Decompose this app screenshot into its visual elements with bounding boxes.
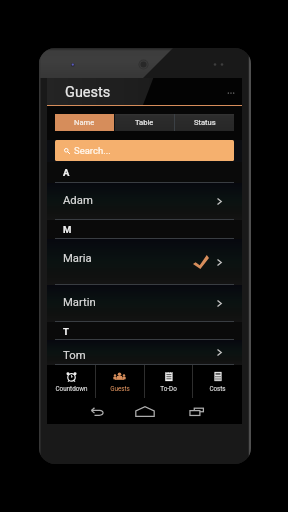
button[interactable]: Name bbox=[55, 114, 114, 131]
staticText: Tom bbox=[63, 349, 86, 362]
staticText: Guests bbox=[110, 385, 130, 392]
button[interactable]: Back bbox=[80, 398, 115, 424]
staticText: Countdown bbox=[55, 385, 88, 392]
button[interactable]: Martin bbox=[47, 285, 242, 322]
button[interactable]: More options bbox=[225, 87, 237, 98]
staticText: Search... bbox=[74, 145, 111, 156]
staticText: Guests bbox=[65, 84, 111, 101]
staticText: Martin bbox=[63, 296, 96, 309]
button[interactable]: Countdown bbox=[47, 365, 95, 398]
staticText: Table bbox=[135, 118, 154, 127]
staticText: Status bbox=[194, 118, 216, 127]
button[interactable]: Guests bbox=[95, 365, 144, 398]
staticText: Maria bbox=[63, 252, 92, 265]
button[interactable]: Table bbox=[115, 114, 174, 131]
button[interactable]: Recents bbox=[179, 398, 214, 424]
button[interactable]: Costs bbox=[193, 365, 242, 398]
staticText: A bbox=[63, 167, 70, 178]
staticText: Name bbox=[74, 118, 95, 127]
staticText: Costs bbox=[209, 385, 226, 392]
button[interactable]: Adam bbox=[47, 183, 242, 220]
staticText: Adam bbox=[63, 194, 93, 207]
button[interactable]: Home bbox=[127, 398, 162, 424]
staticText: M bbox=[63, 224, 72, 235]
button[interactable]: To-Do bbox=[144, 365, 193, 398]
staticText: T bbox=[63, 326, 69, 337]
button[interactable]: Tom bbox=[47, 340, 242, 365]
button[interactable]: Search... bbox=[55, 140, 234, 161]
button[interactable]: Maria bbox=[47, 239, 242, 285]
button[interactable]: Status bbox=[175, 114, 234, 131]
staticText: To-Do bbox=[160, 385, 177, 392]
